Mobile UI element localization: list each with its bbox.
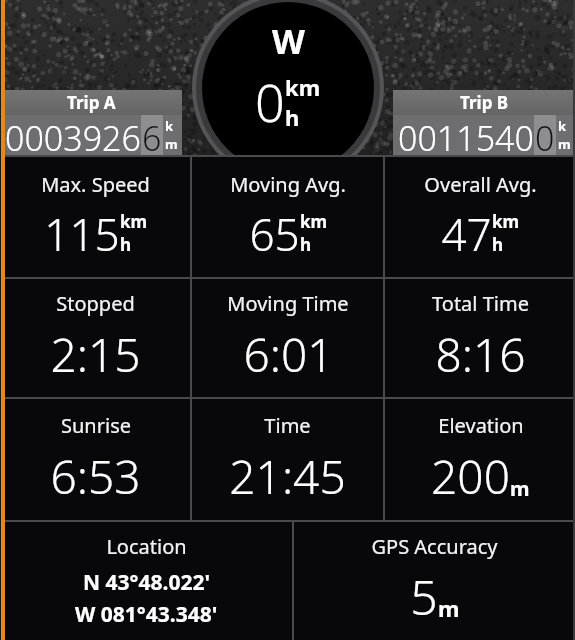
staticText: km [285,72,321,102]
button[interactable]: Stopped [0,279,190,397]
button[interactable]: Elevation [385,399,575,520]
staticText: km [120,210,148,233]
staticText: Total Time [432,290,529,317]
staticText: 0 [255,66,285,137]
staticText: 47 [441,204,492,264]
staticText: 0011540 [398,115,534,155]
button[interactable]: Trip B [393,90,575,155]
staticText: Trip B [460,91,509,114]
staticText: Location [106,533,187,560]
staticText: 6:01 [243,323,334,386]
button[interactable]: Time [192,399,383,520]
staticText: Time [264,412,311,439]
staticText: 5 [410,564,438,629]
staticText: 6:53 [50,445,141,508]
staticText: N 43°48.022' [83,568,211,597]
staticText: Moving Time [227,290,349,317]
staticText: W [272,18,305,64]
staticText: m [558,135,571,153]
staticText: m [510,475,530,502]
staticText: Elevation [438,412,524,439]
staticText: 2:15 [50,323,141,386]
button[interactable]: Moving Time [192,279,383,397]
staticText: m [438,593,460,623]
staticText: k [165,117,174,135]
staticText: Stopped [56,290,135,317]
staticText: 8:16 [435,323,526,386]
button[interactable]: Total Time [385,279,575,397]
button[interactable]: Max. Speed [0,157,190,277]
staticText: h [300,233,312,256]
button[interactable]: GPS Accuracy [294,522,575,640]
staticText: 21:45 [229,445,346,508]
staticText: km [492,210,520,233]
staticText: 0 [535,115,555,155]
staticText: 0003926 [5,115,141,155]
staticText: k [558,117,567,135]
staticText: h [120,233,132,256]
staticText: Trip A [67,91,116,114]
staticText: 200 [431,445,510,508]
staticText: 6 [142,115,162,155]
staticText: Max. Speed [41,171,150,198]
staticText: 65 [249,204,300,264]
staticText: Sunrise [61,412,131,439]
button[interactable]: Overall Avg. [385,157,575,277]
staticText: Moving Avg. [230,171,346,198]
staticText: m [165,135,178,153]
button[interactable]: Moving Avg. [192,157,383,277]
staticText: Overall Avg. [424,171,537,198]
staticText: h [492,233,504,256]
button[interactable]: Location [0,522,292,640]
staticText: km [300,210,328,233]
button[interactable]: Sunrise [0,399,190,520]
staticText: 115 [44,204,120,264]
button[interactable]: Trip A [0,90,182,155]
staticText: W 081°43.348' [75,600,218,629]
staticText: GPS Accuracy [371,533,498,560]
staticText: h [285,102,300,132]
